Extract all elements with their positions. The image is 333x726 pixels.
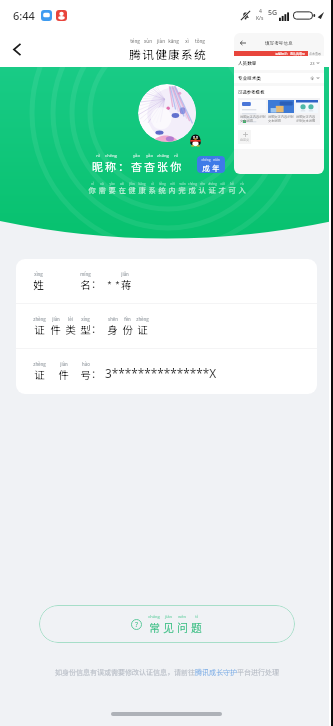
- staticText: 点击查看: [309, 52, 322, 56]
- staticText: 专业技术类: [238, 75, 261, 82]
- staticText: 问: [177, 619, 188, 635]
- button[interactable]: 说明文字内容示例文本说明: [296, 100, 318, 123]
- staticText: 年: [212, 162, 220, 173]
- staticText: 系: [148, 185, 156, 195]
- staticText: shēn: [108, 316, 118, 322]
- staticText: 入: [238, 185, 246, 195]
- staticText: yǎo: [146, 152, 153, 158]
- staticText: fèn: [124, 316, 131, 322]
- staticText: téng: [130, 38, 140, 45]
- staticText: 统: [194, 46, 206, 63]
- staticText: 才: [218, 185, 226, 195]
- staticText: zhèng: [33, 361, 46, 367]
- staticText: nì: [96, 152, 100, 158]
- staticText: 可: [228, 185, 236, 195]
- staticText: nǐ: [174, 152, 178, 158]
- staticText: tí: [195, 613, 198, 619]
- staticText: xì: [151, 181, 154, 185]
- staticText: 号: [80, 367, 91, 382]
- staticText: 3***************X: [105, 365, 217, 381]
- staticText: xìng: [34, 271, 43, 277]
- staticText: 件: [50, 322, 61, 337]
- staticText: 自定义: [240, 138, 250, 142]
- staticText: 杳: [131, 158, 142, 174]
- staticText: 杳: [144, 158, 155, 174]
- staticText: 名: [80, 277, 91, 292]
- staticText: 腾: [129, 46, 141, 63]
- button[interactable]: Avatar: [138, 84, 196, 142]
- staticText: 完: [178, 185, 186, 195]
- button[interactable]: 说明文字内容示例文本说明: [268, 100, 294, 123]
- staticText: 全: [310, 75, 315, 81]
- staticText: 题: [191, 619, 202, 635]
- staticText: *: [107, 277, 112, 292]
- staticText: 在: [118, 185, 126, 195]
- staticText: 健: [128, 185, 136, 195]
- staticText: jiàn: [129, 181, 135, 185]
- button[interactable]: 专业技术类: [234, 73, 324, 83]
- staticText: chéng: [201, 157, 211, 162]
- staticText: 6:44: [13, 8, 35, 23]
- staticText: míng: [80, 271, 91, 277]
- button[interactable]: 腾讯成长守护: [195, 667, 237, 677]
- staticText: zhāng: [157, 152, 169, 158]
- staticText: 说明文字内容示例文本说明: [296, 114, 318, 123]
- staticText: 可选参考模板: [238, 89, 265, 95]
- staticText: chēng: [105, 152, 117, 158]
- staticText: jiàn: [60, 361, 68, 367]
- staticText: jiǎng: [121, 271, 129, 277]
- staticText: 件: [58, 367, 69, 382]
- staticText: xì: [185, 38, 189, 45]
- staticText: 认: [198, 185, 206, 195]
- staticText: jiàn: [165, 613, 172, 619]
- staticText: zhèng: [208, 181, 217, 185]
- staticText: 证: [137, 322, 148, 337]
- staticText: 健: [155, 46, 167, 63]
- staticText: 系: [181, 46, 193, 63]
- button[interactable]: ?: [39, 605, 295, 643]
- staticText: 说明文字内容示例文本说明: [240, 114, 266, 123]
- staticText: 康: [138, 185, 146, 195]
- staticText: 康: [168, 46, 180, 63]
- staticText: 昵: [92, 158, 103, 174]
- staticText: tǒng: [195, 38, 205, 45]
- staticText: rù: [240, 181, 244, 185]
- staticText: 姓: [33, 277, 44, 292]
- staticText: 类: [65, 322, 76, 337]
- button[interactable]: Back: [0, 32, 34, 66]
- staticText: 5G: [268, 8, 278, 18]
- staticText: hào: [82, 361, 90, 367]
- button[interactable]: 说明文字内容示例文本说明: [240, 100, 266, 123]
- staticText: ?: [135, 620, 139, 630]
- staticText: 内: [168, 185, 176, 195]
- staticText: ：: [118, 158, 129, 174]
- staticText: ：: [91, 276, 102, 291]
- staticText: zhèng: [136, 316, 149, 322]
- staticText: 证: [34, 322, 45, 337]
- staticText: 23: [310, 60, 315, 66]
- other: Back: [240, 40, 246, 46]
- button[interactable]: Add: [238, 130, 251, 144]
- staticText: ：: [91, 321, 102, 336]
- staticText: zhèng: [33, 316, 46, 322]
- staticText: xíng: [81, 316, 90, 322]
- staticText: chéng: [188, 181, 197, 185]
- staticText: 你: [170, 158, 181, 174]
- staticText: nèi: [170, 181, 175, 185]
- staticText: 说明文字内容示例文本说明: [268, 114, 294, 123]
- staticText: zài: [120, 181, 124, 185]
- staticText: 温馨提示：请认真填写: [275, 52, 306, 56]
- staticText: wán: [179, 181, 186, 185]
- staticText: ：: [91, 366, 102, 381]
- staticText: 讯: [142, 46, 154, 63]
- button[interactable]: Floating window: [234, 33, 324, 174]
- button[interactable]: 人员数量: [234, 56, 324, 70]
- staticText: 需: [98, 185, 106, 195]
- staticText: kāng: [168, 38, 179, 45]
- staticText: 张: [157, 158, 168, 174]
- staticText: 份: [122, 322, 133, 337]
- button[interactable]: chéng: [197, 156, 225, 173]
- staticText: 证: [34, 367, 45, 382]
- staticText: 身: [107, 322, 118, 337]
- staticText: cháng: [148, 613, 160, 619]
